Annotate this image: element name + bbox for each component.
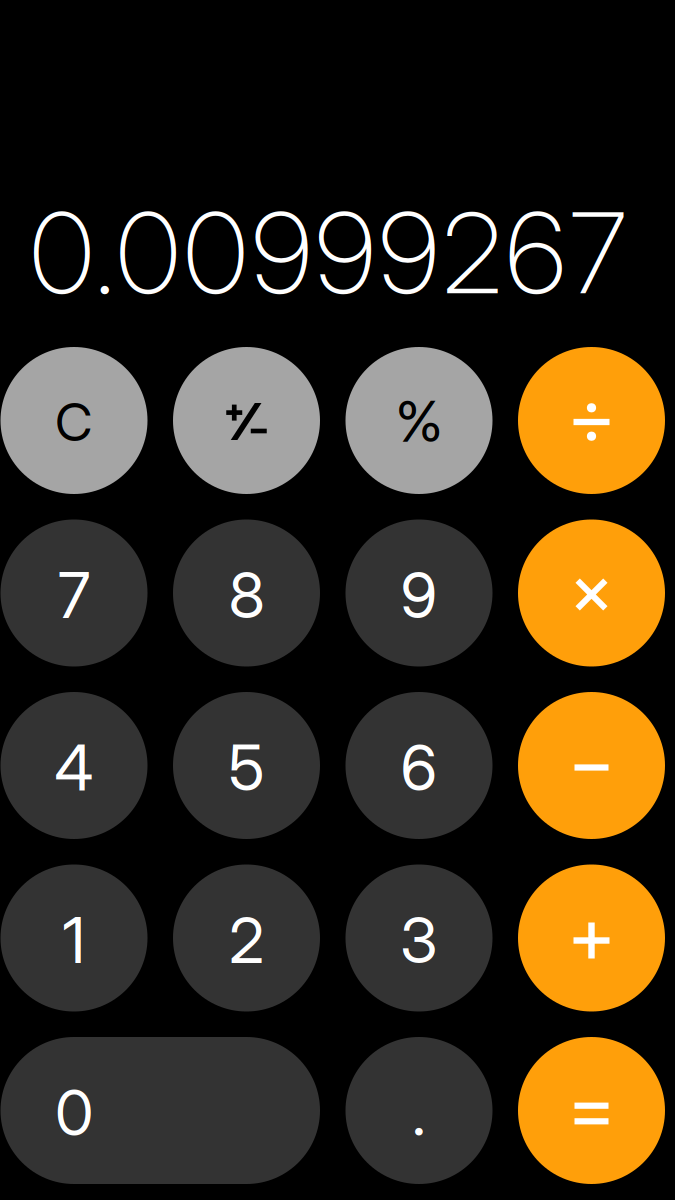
button[interactable]: 0 [0,1037,320,1184]
button[interactable]: Subtract [518,692,665,839]
button[interactable]: 1 [0,864,147,1011]
button[interactable]: 5 [173,692,320,839]
button[interactable]: Divide [518,347,665,494]
staticText: 7 [58,557,90,633]
button[interactable]: C [0,347,147,494]
button[interactable]: . [345,1037,492,1184]
staticText: 4 [54,730,93,806]
button[interactable]: Plus Minus [173,347,320,494]
button[interactable]: 2 [173,864,320,1011]
staticText: 8 [228,557,264,633]
staticText: 5 [228,730,264,806]
button[interactable]: Multiply [518,519,665,666]
staticText: % [395,388,442,455]
staticText: C [55,390,93,453]
staticText: 3 [400,902,438,978]
staticText: 6 [400,730,437,806]
staticText: 0 [55,1075,93,1151]
staticText: 1 [62,902,85,978]
button[interactable]: 7 [0,519,147,666]
button[interactable]: 9 [345,519,492,666]
button[interactable]: 6 [345,692,492,839]
button[interactable]: Add [518,864,665,1011]
button[interactable]: 8 [173,519,320,666]
button[interactable]: 3 [345,864,492,1011]
button[interactable]: Equals [518,1037,665,1184]
button[interactable]: 4 [0,692,147,839]
staticText: 0.00999267 [30,186,626,320]
staticText: 9 [400,557,437,633]
staticText: 2 [229,902,264,978]
staticText: . [412,1075,426,1151]
button[interactable]: % [345,347,492,494]
